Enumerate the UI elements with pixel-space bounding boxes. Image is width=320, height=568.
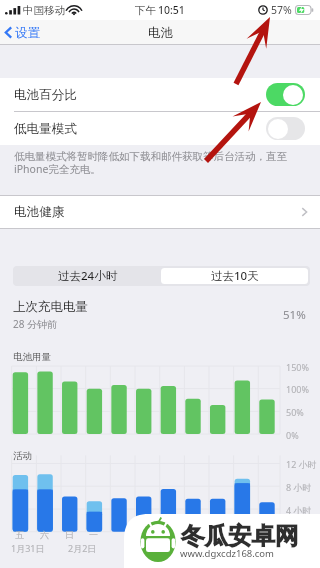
staticText: 电池用量 bbox=[13, 351, 51, 363]
staticText: 设置 bbox=[15, 25, 40, 41]
button[interactable]: 过去24小时 bbox=[15, 268, 161, 284]
staticText: 8 小时 bbox=[286, 481, 312, 493]
staticText: 一 bbox=[89, 529, 98, 540]
staticText: 过去24小时 bbox=[58, 268, 118, 284]
staticText: 2月2日 bbox=[68, 542, 97, 554]
staticText: 上次充电电量 bbox=[13, 299, 88, 315]
staticText: 10:51 bbox=[158, 3, 185, 17]
staticText: 冬瓜安卓网 bbox=[181, 521, 299, 551]
staticText: 4 小时 bbox=[286, 504, 312, 516]
staticText: 12 小时 bbox=[286, 458, 317, 470]
staticText: 150% bbox=[286, 361, 309, 373]
button[interactable]: 过去10天 bbox=[161, 268, 308, 284]
staticText: 0% bbox=[286, 429, 299, 441]
staticText: 日 bbox=[65, 529, 74, 540]
other: Annotation arrows bbox=[0, 0, 320, 568]
staticText: www.dgxcdz168.com bbox=[180, 547, 274, 560]
staticText: 五 bbox=[15, 529, 24, 540]
staticText: 28 分钟前 bbox=[13, 317, 58, 331]
staticText: 电池百分比 bbox=[14, 87, 77, 103]
button[interactable]: 低电量模式 bbox=[0, 112, 320, 145]
staticText: 57% bbox=[271, 3, 292, 17]
staticText: 低电量模式 bbox=[14, 121, 77, 137]
staticText: 电池 bbox=[148, 25, 173, 41]
button[interactable]: 电池百分比 bbox=[0, 78, 320, 111]
staticText: 100% bbox=[286, 383, 309, 395]
button[interactable]: Switch off bbox=[266, 117, 305, 140]
staticText: 1月31日 bbox=[11, 542, 45, 554]
button[interactable]: 设置 bbox=[0, 20, 46, 45]
staticText: 中国移动 bbox=[23, 4, 65, 17]
button[interactable]: Switch on bbox=[266, 83, 305, 106]
staticText: 活动 bbox=[13, 450, 32, 462]
staticText: 六 bbox=[40, 529, 49, 540]
button[interactable]: 电池健康 bbox=[0, 195, 320, 229]
staticText: 50% bbox=[286, 406, 304, 418]
staticText: 51% bbox=[283, 307, 306, 323]
staticText: 过去10天 bbox=[211, 268, 259, 284]
staticText: 低电量模式将暂时降低如下载和邮件获取等后台活动，直至 iPhone完全充电。 bbox=[14, 149, 294, 176]
staticText: 下午 bbox=[135, 4, 156, 17]
staticText: 电池健康 bbox=[14, 204, 65, 220]
